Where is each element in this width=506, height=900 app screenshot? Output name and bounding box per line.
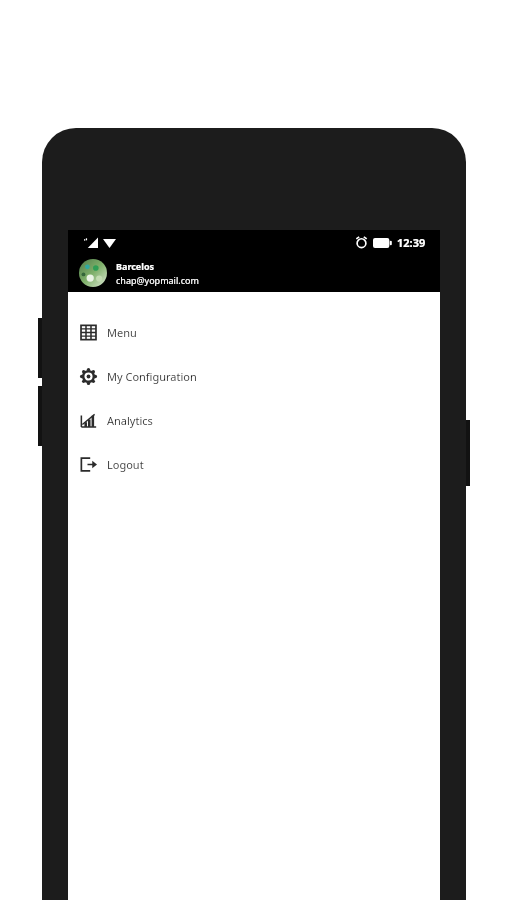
staticText: chap@yopmail.com <box>116 274 199 286</box>
button[interactable]: My Configuration <box>68 354 440 398</box>
button[interactable]: Logout <box>68 442 440 486</box>
staticText: Barcelos <box>116 260 155 272</box>
button[interactable]: Analytics <box>68 398 440 442</box>
staticText: Menu <box>107 325 137 340</box>
staticText: Logout <box>107 457 144 472</box>
staticText: My Configuration <box>107 369 197 384</box>
button[interactable]: Barcelos <box>68 254 440 292</box>
button[interactable]: Menu <box>68 310 440 354</box>
staticText: Analytics <box>107 413 153 428</box>
staticText: 12:39 <box>397 235 426 250</box>
